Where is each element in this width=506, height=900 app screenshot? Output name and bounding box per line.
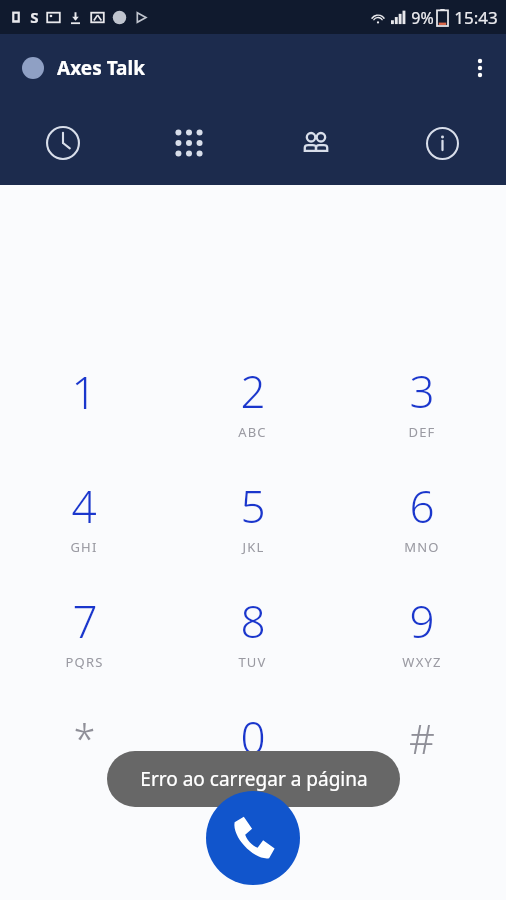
staticText: ABC [238, 423, 267, 441]
button[interactable]: 5 [168, 458, 337, 573]
staticText: MNO [404, 538, 440, 556]
staticText: Erro ao carregar a página [140, 766, 368, 792]
staticText: 3 [409, 361, 435, 421]
staticText: TUV [238, 653, 267, 671]
button[interactable]: Axes Talk [22, 55, 145, 81]
staticText: 9 [409, 591, 435, 651]
button[interactable]: 0 [168, 688, 337, 803]
button[interactable]: Dial pad [126, 102, 252, 184]
button[interactable]: Erro ao carregar a página [107, 751, 400, 807]
staticText: 2 [240, 361, 266, 421]
button[interactable]: Info [379, 102, 506, 184]
staticText: JKL [242, 538, 265, 556]
button[interactable]: 7 [0, 573, 168, 688]
button[interactable]: # [337, 688, 506, 803]
staticText: 4 [71, 476, 97, 536]
staticText: * [73, 711, 96, 765]
button[interactable]: More options [454, 42, 506, 94]
button[interactable]: Call [206, 791, 300, 885]
staticText: Axes Talk [57, 55, 145, 81]
button[interactable]: 4 [0, 458, 168, 573]
staticText: 15:43 [454, 6, 498, 29]
staticText: 7 [72, 591, 98, 651]
button[interactable]: Recent calls [0, 102, 126, 184]
staticText: S [30, 7, 39, 27]
staticText: 8 [240, 591, 266, 651]
staticText: WXYZ [402, 653, 442, 671]
button[interactable]: 6 [337, 458, 506, 573]
button[interactable]: 8 [168, 573, 337, 688]
staticText: 5 [240, 476, 266, 536]
staticText: 9% [411, 7, 434, 29]
button[interactable]: 1 [0, 343, 168, 458]
button[interactable]: 2 [168, 343, 337, 458]
staticText: 0 [240, 707, 266, 767]
staticText: 1 [71, 362, 97, 422]
staticText: # [409, 711, 435, 765]
staticText: DEF [408, 423, 436, 441]
staticText: 6 [409, 476, 435, 536]
button[interactable]: 3 [337, 343, 506, 458]
staticText: PQRS [65, 653, 104, 671]
staticText: GHI [70, 538, 98, 556]
button[interactable]: * [0, 688, 168, 803]
button[interactable]: 9 [337, 573, 506, 688]
button[interactable]: Contacts [252, 102, 379, 184]
